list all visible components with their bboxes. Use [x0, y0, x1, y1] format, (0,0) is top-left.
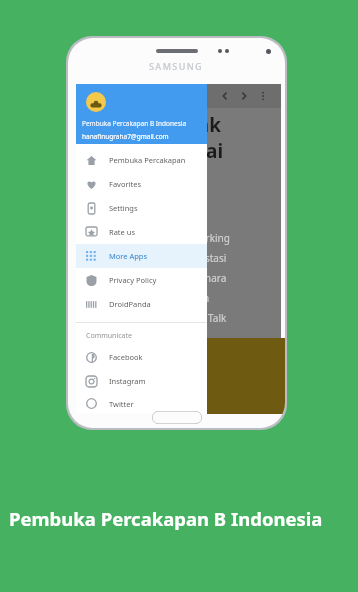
- button[interactable]: Settings: [76, 196, 207, 220]
- staticText: Pembuka Percakapan: [109, 155, 186, 165]
- button[interactable]: Twitter: [76, 393, 207, 414]
- button[interactable]: Pembuka Percakapan: [76, 148, 207, 172]
- button[interactable]: Pembuka Percakapan B Indonesia: [76, 84, 207, 144]
- button[interactable]: Privacy Policy: [76, 268, 207, 292]
- staticText: cak: [188, 112, 221, 138]
- button[interactable]: Forward: [234, 86, 254, 106]
- button[interactable]: Facebook: [76, 345, 207, 369]
- button[interactable]: Back: [216, 87, 234, 105]
- staticText: nvestasi: [188, 251, 227, 265]
- staticText: Rate us: [109, 227, 135, 237]
- staticText: Facebook: [109, 352, 143, 362]
- staticText: Instagram: [109, 376, 146, 386]
- staticText: Favorites: [109, 179, 142, 189]
- staticText: Settings: [109, 203, 138, 213]
- staticText: Communicate: [86, 331, 132, 341]
- button[interactable]: More options: [254, 87, 272, 105]
- button[interactable]: Rate us: [76, 220, 207, 244]
- staticText: SAMSUNG: [149, 60, 204, 72]
- button[interactable]: More Apps: [76, 244, 207, 268]
- staticText: ulai: [188, 138, 224, 164]
- staticText: Pembuka Percakapan B Indonesia: [82, 119, 187, 128]
- staticText: Asmara: [188, 271, 227, 285]
- button[interactable]: Favorites: [76, 172, 207, 196]
- staticText: Twitter: [109, 399, 134, 409]
- staticText: tworking: [188, 231, 230, 245]
- button[interactable]: DroidPanda: [76, 292, 207, 316]
- staticText: man: [188, 291, 210, 305]
- staticText: DroidPanda: [109, 299, 151, 309]
- staticText: Pembuka Percakapan B Indonesia: [9, 506, 323, 531]
- staticText: Privacy Policy: [109, 275, 157, 285]
- staticText: More Apps: [109, 251, 148, 261]
- staticText: hanafinugraha7@gmail.com: [82, 132, 169, 141]
- staticText: eep Talk: [188, 311, 227, 325]
- button[interactable]: Instagram: [76, 369, 207, 393]
